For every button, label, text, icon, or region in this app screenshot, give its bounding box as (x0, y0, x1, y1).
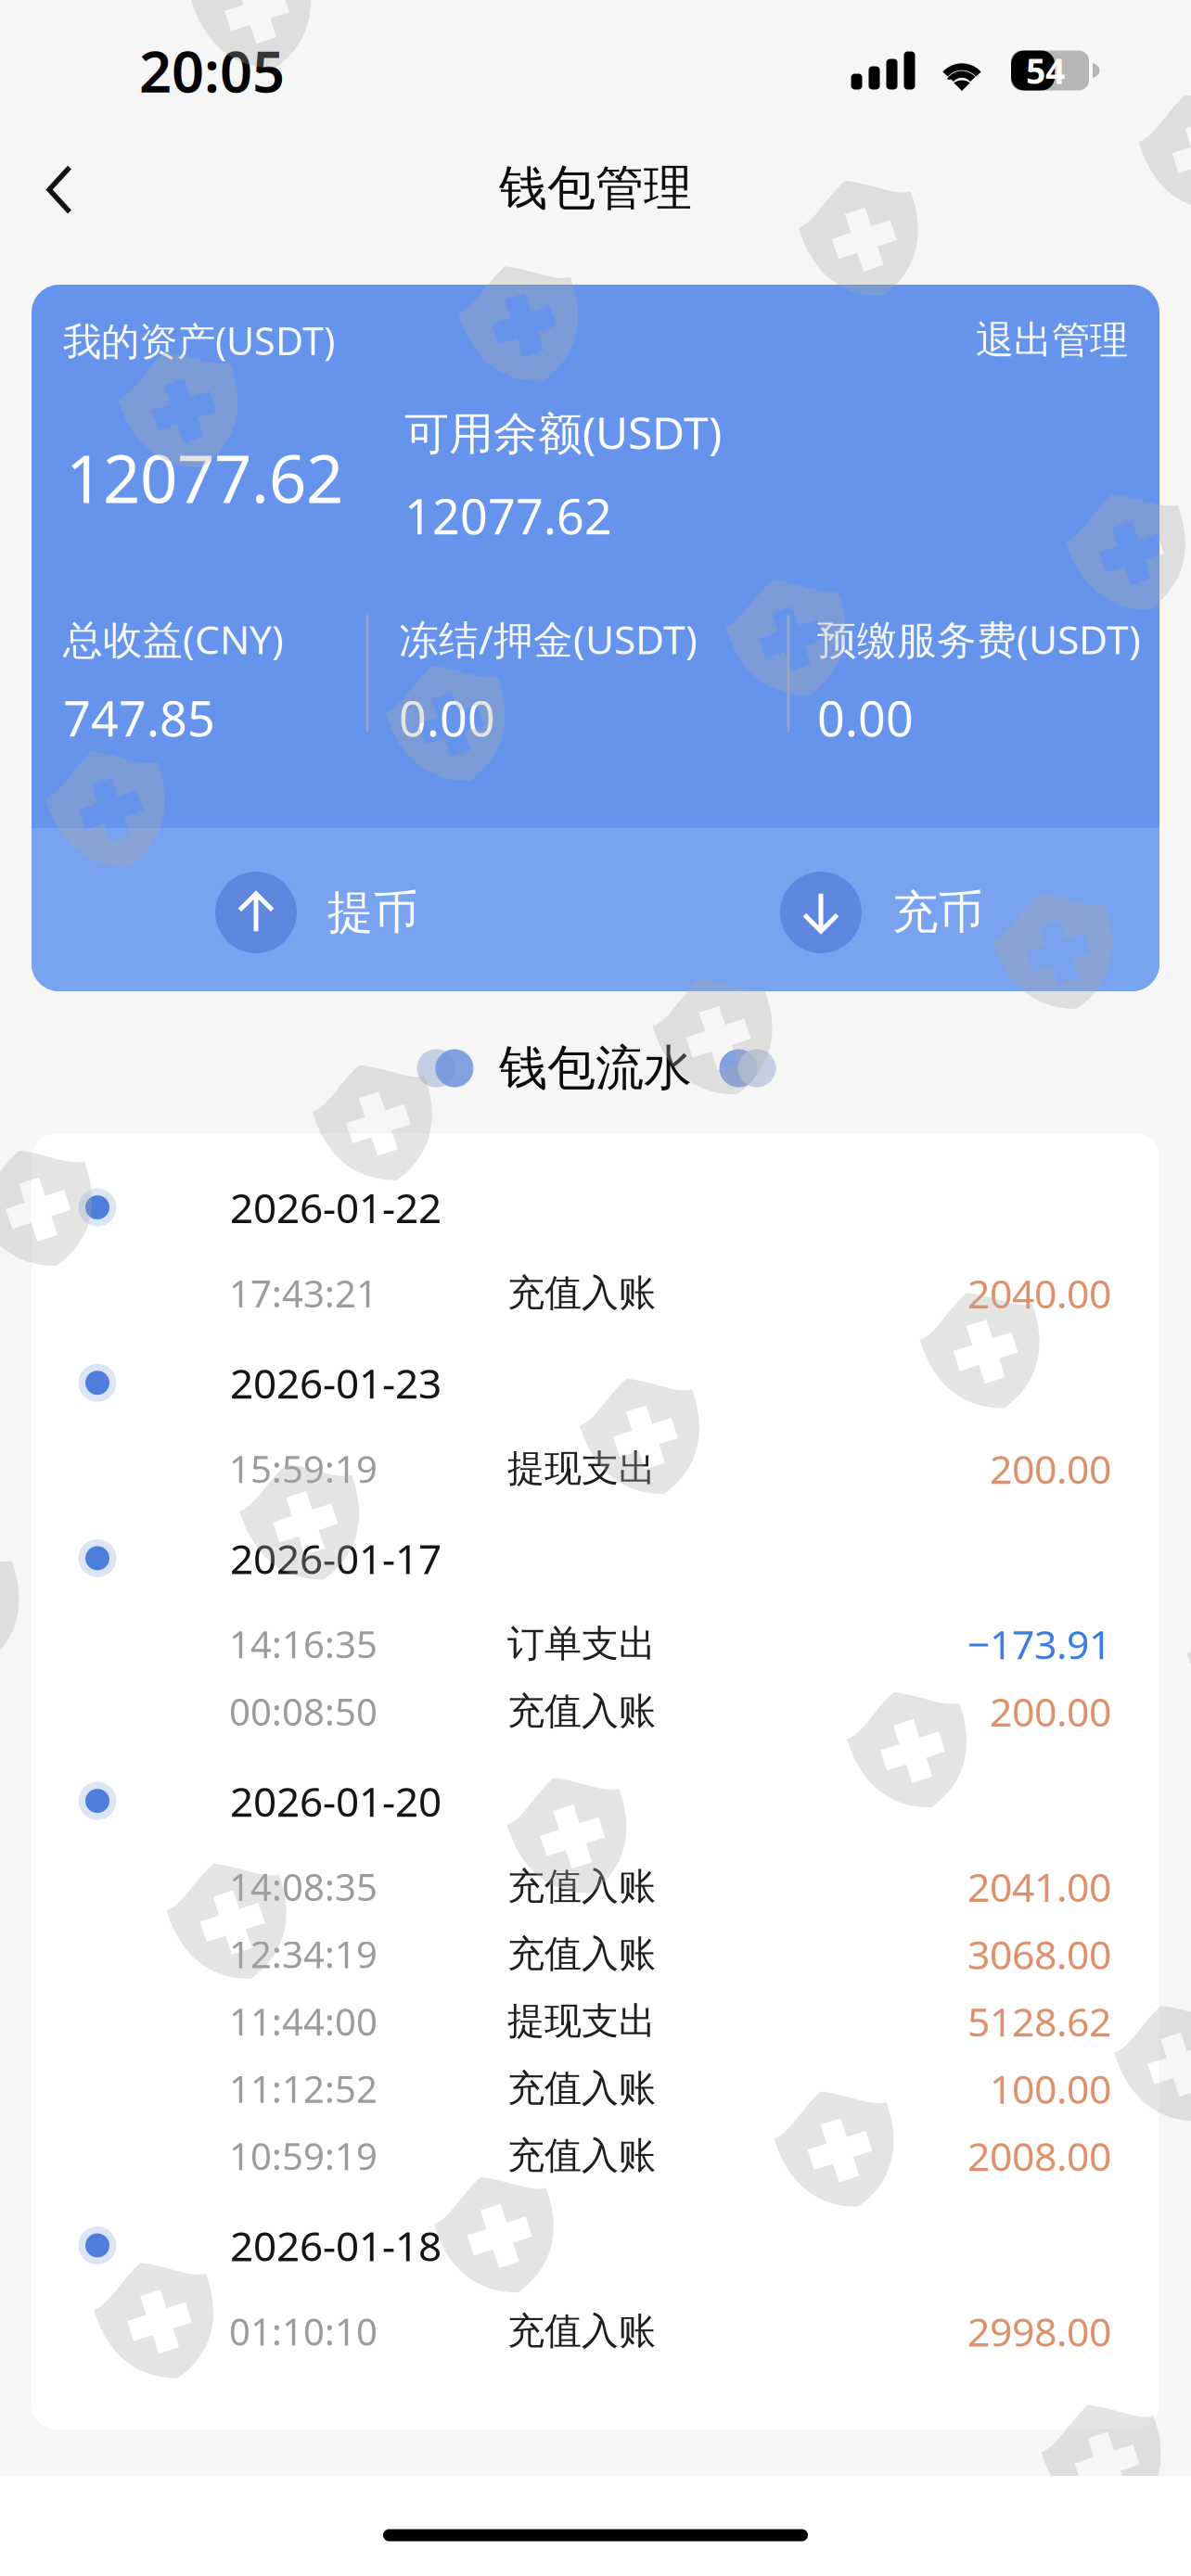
button[interactable]: 充币 (780, 857, 1086, 968)
staticText: 2998.00 (967, 2305, 1111, 2357)
staticText: 2041.00 (967, 1860, 1111, 1913)
staticText: 充值入账 (507, 1864, 656, 1909)
staticText: 100.00 (990, 2062, 1111, 2115)
staticText: 3068.00 (967, 1928, 1111, 1980)
staticText: 2008.00 (967, 2129, 1111, 2182)
staticText: 2026-01-18 (230, 2218, 442, 2272)
staticText: 钱包管理 (499, 159, 692, 218)
staticText: 747.85 (63, 686, 215, 750)
staticText: 14:08:35 (229, 1862, 378, 1911)
staticText: 钱包流水 (499, 1039, 692, 1098)
staticText: 12077.62 (66, 434, 343, 521)
staticText: 退出管理 (976, 317, 1128, 364)
staticText: 总收益(CNY) (63, 613, 284, 665)
staticText: 0.00 (399, 686, 495, 750)
staticText: 01:10:10 (229, 2307, 378, 2356)
staticText: 充值入账 (507, 1270, 656, 1316)
staticText: 20:05 (139, 33, 285, 108)
staticText: 2026-01-17 (230, 1531, 442, 1585)
staticText: 2026-01-22 (230, 1180, 442, 1234)
staticText: 可用余额(USDT) (404, 403, 722, 462)
staticText: 充值入账 (507, 1931, 656, 1977)
staticText: 2040.00 (967, 1267, 1111, 1319)
staticText: 200.00 (990, 1685, 1111, 1737)
staticText: 00:08:50 (229, 1687, 378, 1736)
staticText: 充值入账 (507, 2308, 656, 2354)
staticText: 我的资产(USDT) (63, 315, 335, 366)
staticText: 充值入账 (507, 1688, 656, 1734)
button[interactable]: 提币 (215, 857, 521, 968)
staticText: 12:34:19 (229, 1929, 378, 1978)
staticText: 12077.62 (404, 484, 612, 548)
staticText: 冻结/押金(USDT) (399, 613, 698, 665)
staticText: 2026-01-23 (230, 1356, 442, 1410)
staticText: 提现支出 (507, 1446, 656, 1491)
staticText: 充币 (892, 884, 983, 941)
button[interactable]: Back (8, 146, 110, 235)
staticText: 5128.62 (967, 1995, 1111, 2047)
staticText: 提现支出 (507, 1998, 656, 2044)
staticText: 54 (1026, 47, 1065, 93)
staticText: 充值入账 (507, 2066, 656, 2111)
staticText: 2026-01-20 (230, 1774, 442, 1828)
staticText: 充值入账 (507, 2133, 656, 2178)
staticText: 11:44:00 (229, 1997, 378, 2046)
staticText: 15:59:19 (229, 1444, 378, 1493)
staticText: 17:43:21 (229, 1268, 378, 1318)
staticText: 提币 (327, 884, 418, 941)
staticText: 14:16:35 (229, 1619, 378, 1668)
staticText: 11:12:52 (229, 2064, 378, 2113)
staticText: 200.00 (990, 1442, 1111, 1495)
staticText: −173.91 (967, 1618, 1111, 1670)
staticText: 10:59:19 (229, 2131, 378, 2180)
staticText: 预缴服务费(USDT) (817, 613, 1141, 665)
button[interactable]: 退出管理 (924, 316, 1128, 364)
staticText: 订单支出 (507, 1621, 656, 1667)
staticText: 0.00 (817, 686, 914, 750)
